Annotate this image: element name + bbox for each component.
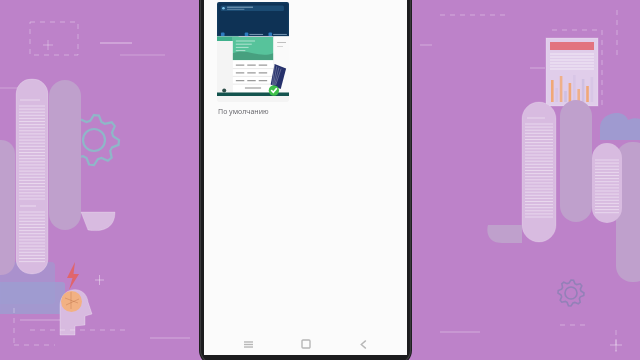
- button[interactable]: Default theme preview: [217, 2, 289, 102]
- button[interactable]: Back: [349, 333, 377, 355]
- staticText: По умолчанию: [218, 107, 269, 117]
- button[interactable]: Recents: [234, 333, 262, 355]
- button[interactable]: Home: [292, 333, 320, 355]
